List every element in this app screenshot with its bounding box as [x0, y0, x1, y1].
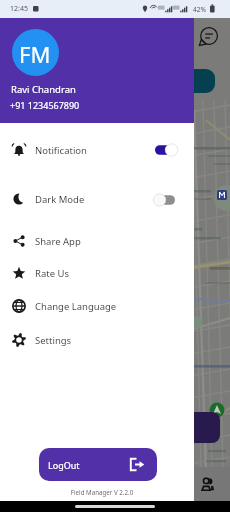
- button[interactable]: Switch off: [151, 189, 180, 211]
- button[interactable]: Change Language: [0, 290, 194, 322]
- staticText: Field Manager V 2.2.0: [5, 488, 199, 496]
- staticText: 42%: [193, 5, 206, 14]
- button[interactable]: Rate Us: [0, 257, 194, 289]
- staticText: FM: [19, 39, 51, 69]
- staticText: Share App: [35, 235, 81, 248]
- button[interactable]: LogOut: [39, 448, 157, 481]
- button[interactable]: Dark Mode: [0, 183, 194, 215]
- button[interactable]: People: [200, 477, 215, 492]
- staticText: Rate Us: [35, 267, 69, 280]
- staticText: Change Language: [35, 300, 117, 313]
- staticText: Ravi Chandran: [11, 83, 76, 96]
- staticText: Dark Mode: [35, 193, 85, 206]
- staticText: Notification: [35, 144, 87, 157]
- button[interactable]: Chat: [199, 27, 218, 46]
- staticText: 12:45: [10, 4, 28, 14]
- staticText: LogOut: [48, 459, 80, 471]
- button[interactable]: Notification: [0, 134, 194, 166]
- staticText: Settings: [35, 334, 72, 347]
- button[interactable]: Share App: [0, 225, 194, 257]
- button[interactable]: Switch on: [151, 139, 180, 161]
- button[interactable]: Settings: [0, 324, 194, 356]
- staticText: +91 1234567890: [10, 99, 80, 111]
